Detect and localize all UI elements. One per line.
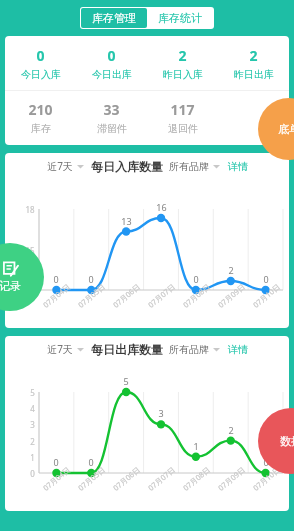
staticText: 4 [30, 403, 35, 414]
button[interactable]: 33 [76, 100, 147, 135]
staticText: 0 [30, 468, 35, 479]
button[interactable]: 117 [147, 100, 218, 135]
staticText: 0 [53, 456, 59, 468]
staticText: 3 [30, 419, 35, 430]
button[interactable]: 所有品牌 [169, 343, 220, 356]
staticText: 07月04日 [40, 464, 72, 493]
staticText: 滞留件 [97, 122, 127, 135]
staticText: 退回件 [168, 122, 198, 135]
staticText: 07月07日 [145, 464, 177, 493]
staticText: 昨日出库 [234, 68, 274, 81]
staticText: 2 [30, 436, 35, 447]
staticText: 1 [30, 452, 35, 463]
staticText: 详情 [228, 343, 248, 356]
button[interactable]: 记录 [0, 243, 44, 311]
staticText: 07月08日 [180, 281, 212, 310]
staticText: 底单 [278, 122, 294, 136]
staticText: 0 [263, 273, 269, 285]
staticText: 18 [25, 204, 35, 215]
staticText: 07月07日 [145, 281, 177, 310]
staticText: 0 [88, 456, 94, 468]
staticText: 13 [121, 215, 132, 227]
staticText: 今日出库 [92, 68, 132, 81]
staticText: 07月06日 [110, 464, 142, 493]
staticText: 0 [263, 456, 269, 468]
button[interactable]: 库存管理 [81, 8, 147, 28]
staticText: 近7天 [47, 159, 73, 173]
staticText: 2 [249, 46, 258, 65]
staticText: 0 [107, 46, 116, 65]
staticText: 0 [36, 46, 45, 65]
staticText: 1 [193, 440, 199, 452]
staticText: 数据 [280, 434, 294, 448]
staticText: 07月05日 [75, 281, 107, 310]
staticText: 0 [193, 273, 199, 285]
staticText: 所有品牌 [169, 160, 209, 173]
staticText: 0 [53, 273, 59, 285]
button[interactable]: 所有品牌 [169, 160, 220, 173]
staticText: 0 [88, 273, 94, 285]
staticText: 2 [228, 424, 234, 436]
staticText: 2 [228, 264, 234, 276]
staticText: 5 [30, 387, 35, 398]
staticText: 库存 [31, 122, 51, 135]
staticText: 210 [28, 100, 53, 119]
button[interactable]: 2 [147, 46, 218, 81]
staticText: 16 [156, 201, 167, 213]
staticText: 库存管理 [92, 11, 136, 25]
button[interactable]: 210 [5, 100, 76, 135]
staticText: 117 [170, 100, 195, 119]
staticText: 5 [123, 375, 129, 387]
staticText: 33 [103, 100, 120, 119]
button[interactable]: 数据 [258, 408, 294, 474]
staticText: 近7天 [47, 342, 73, 356]
staticText: 07月08日 [180, 464, 212, 493]
staticText: 所有品牌 [169, 343, 209, 356]
staticText: 今日入库 [21, 68, 61, 81]
staticText: 07月06日 [110, 281, 142, 310]
button[interactable]: 0 [76, 46, 147, 81]
button[interactable]: 详情 [228, 160, 248, 173]
staticText: 每日入库数量 [91, 159, 163, 174]
button[interactable]: 详情 [228, 343, 248, 356]
staticText: 07月10日 [250, 281, 282, 310]
staticText: 3 [158, 407, 164, 419]
button[interactable]: 近7天 [47, 342, 84, 356]
staticText: 07月10日 [250, 464, 282, 493]
staticText: 昨日入库 [163, 68, 203, 81]
staticText: 15 [25, 245, 35, 256]
button[interactable]: 2 [218, 46, 289, 81]
staticText: 07月09日 [215, 464, 247, 493]
staticText: 记录 [0, 279, 21, 293]
staticText: 库存统计 [158, 11, 202, 25]
button[interactable]: 底单 [258, 98, 294, 160]
staticText: 详情 [228, 160, 248, 173]
staticText: 2 [178, 46, 187, 65]
staticText: 07月05日 [75, 464, 107, 493]
staticText: 07月04日 [40, 281, 72, 310]
staticText: 07月09日 [215, 281, 247, 310]
button[interactable]: 库存统计 [147, 8, 213, 28]
button[interactable]: 0 [5, 46, 76, 81]
button[interactable]: 近7天 [47, 159, 84, 173]
staticText: 每日出库数量 [91, 342, 163, 357]
